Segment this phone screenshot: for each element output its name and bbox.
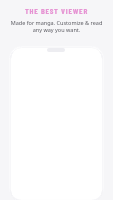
staticText: THE BEST VIEWER — [0, 6, 113, 16]
staticText: Made for manga. Customize & read any way… — [0, 19, 113, 33]
